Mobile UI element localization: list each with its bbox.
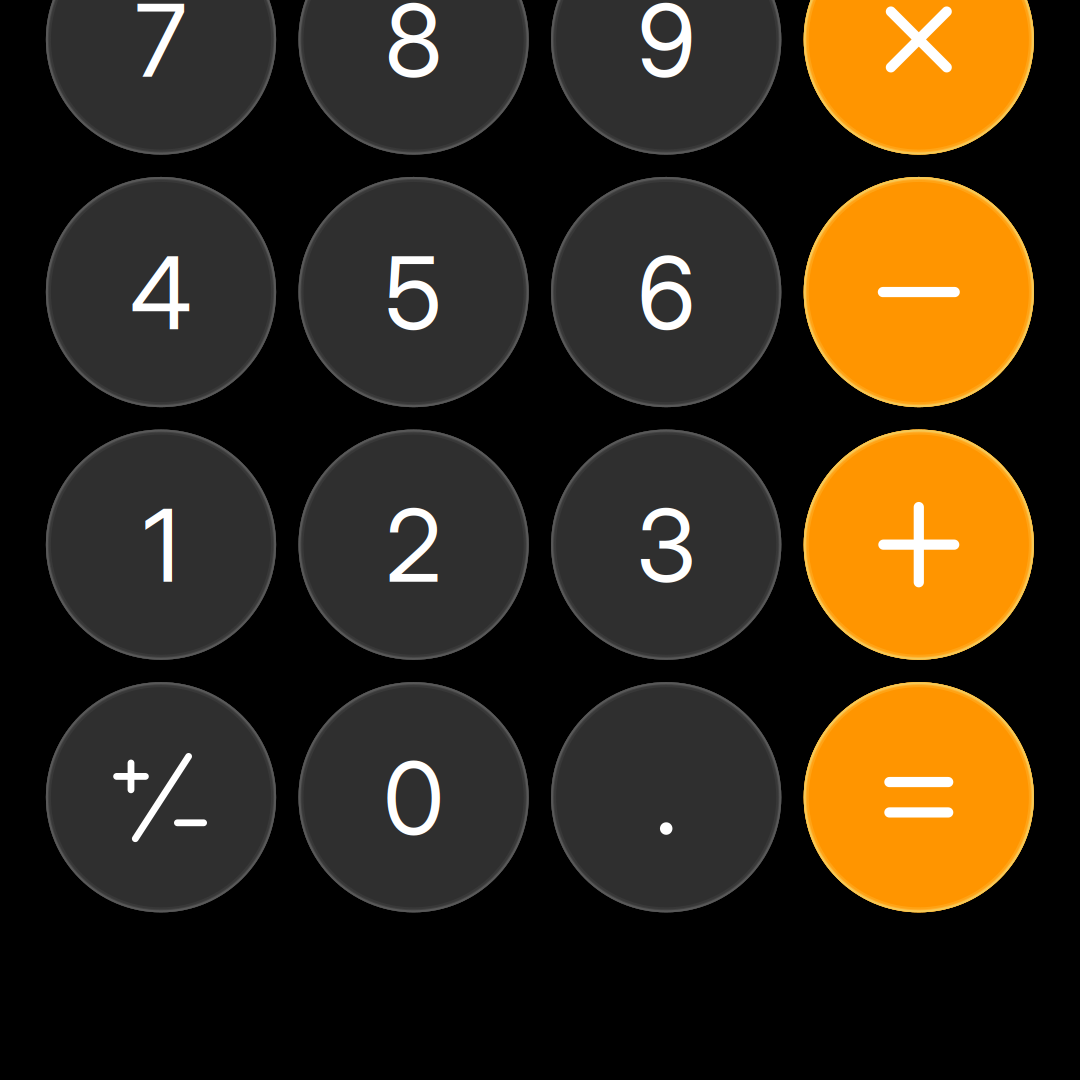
button[interactable]: 2 [298, 429, 529, 660]
staticText: 5 [385, 232, 443, 353]
button[interactable]: 4 [46, 177, 276, 407]
staticText: 7 [135, 0, 187, 101]
button[interactable]: 1 [46, 429, 276, 660]
staticText: 1 [143, 485, 179, 606]
staticText: 2 [386, 485, 442, 606]
button[interactable]: 5 [298, 177, 529, 407]
button[interactable]: Plus Minus [46, 682, 276, 912]
button[interactable]: Equals [804, 682, 1034, 912]
button[interactable]: 7 [46, 0, 276, 155]
button[interactable]: Subtract [804, 177, 1034, 407]
staticText: 0 [383, 738, 444, 859]
button[interactable]: 6 [551, 177, 781, 407]
staticText: 3 [636, 485, 696, 606]
button[interactable]: 8 [298, 0, 529, 155]
button[interactable]: 0 [298, 682, 529, 912]
button[interactable]: 9 [551, 0, 781, 155]
button[interactable]: Decimal Point [551, 682, 781, 912]
staticText: 9 [637, 0, 695, 101]
staticText: 6 [637, 232, 695, 353]
button[interactable]: 3 [551, 429, 781, 660]
button[interactable]: Add [804, 429, 1034, 660]
staticText: 8 [385, 0, 443, 101]
button[interactable]: Multiply [804, 0, 1034, 155]
staticText: 4 [130, 232, 192, 353]
